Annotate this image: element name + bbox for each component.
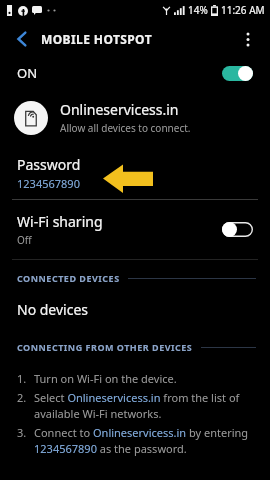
button[interactable]: Password	[0, 153, 270, 199]
staticText: Password	[17, 155, 81, 174]
button[interactable]: Onlineservicess.in	[0, 98, 270, 139]
staticText: Allow all devices to connect.	[60, 121, 191, 135]
staticText: 3.	[17, 425, 27, 440]
button[interactable]: Wi-Fi sharing off	[222, 222, 253, 237]
staticText: 1234567890	[17, 176, 80, 191]
staticText: 14%	[188, 3, 208, 17]
button[interactable]: Back	[8, 25, 36, 53]
staticText: 2.	[17, 390, 27, 405]
staticText: 1.	[17, 371, 27, 386]
staticText: 11:26 AM	[221, 3, 265, 17]
staticText: Off	[17, 233, 32, 247]
button[interactable]: Wi-Fi sharing	[0, 200, 270, 259]
staticText: CONNECTING FROM OTHER DEVICES	[17, 341, 193, 353]
button[interactable]: More options	[234, 25, 262, 53]
button[interactable]: ON	[0, 58, 270, 88]
staticText: ON	[17, 64, 38, 82]
staticText: Turn on Wi-Fi on the device.	[34, 371, 177, 386]
staticText: Wi-Fi sharing	[17, 212, 103, 231]
staticText: Connect to Onlineservicess.in by enterin…	[34, 425, 258, 456]
staticText: Select Onlineservicess.in from the list …	[34, 390, 258, 421]
staticText: MOBILE HOTSPOT	[41, 31, 152, 47]
staticText: No devices	[17, 300, 89, 319]
button[interactable]: Mobile hotspot on	[222, 66, 253, 81]
staticText: Onlineservicess.in	[60, 100, 179, 119]
staticText: CONNECTED DEVICES	[17, 272, 120, 284]
